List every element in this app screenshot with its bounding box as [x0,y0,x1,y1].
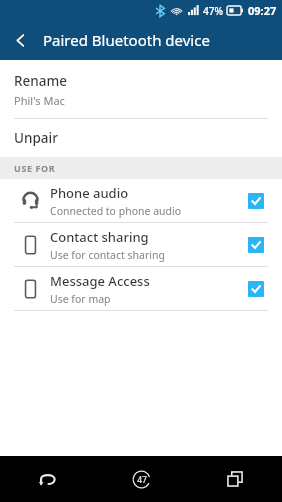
button[interactable]: Contact sharing [0,223,282,266]
staticText: Connected to phone audio [50,204,182,218]
button[interactable]: Phone audio [0,179,282,222]
staticText: Contact sharing [50,228,149,246]
button[interactable]: Home [94,456,188,502]
button[interactable]: Back [0,20,40,60]
staticText: Phil's Mac [14,93,65,108]
button[interactable]: Toggle [244,233,268,257]
button[interactable]: Recent apps [188,456,282,502]
staticText: Message Access [50,272,150,290]
staticText: 47% [203,4,223,18]
button[interactable]: Toggle [244,277,268,301]
staticText: Use for map [50,292,111,306]
button[interactable]: Message Access [0,267,282,310]
button[interactable]: Toggle [244,189,268,213]
staticText: Phone audio [50,184,129,202]
button[interactable]: Rename [0,60,282,118]
button[interactable]: Unpair [0,119,282,157]
staticText: 47 [137,474,147,486]
staticText: Unpair [14,129,58,147]
staticText: 09:27 [248,3,277,18]
button[interactable]: Back [0,456,94,502]
staticText: Paired Bluetooth device [43,30,210,50]
staticText: USE FOR [14,162,56,174]
staticText: Rename [14,72,68,90]
staticText: Use for contact sharing [50,248,165,262]
